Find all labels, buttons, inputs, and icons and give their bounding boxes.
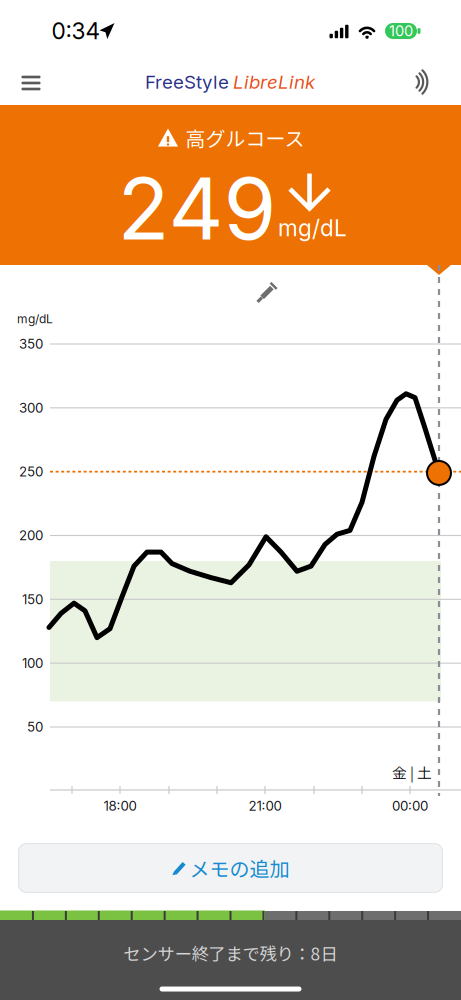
- staticText: 200: [19, 527, 43, 543]
- staticText: 00:00: [392, 798, 428, 814]
- staticText: 21:00: [248, 798, 281, 814]
- staticText: メモの追加: [189, 853, 289, 882]
- staticText: 350: [19, 336, 43, 352]
- staticText: 50: [27, 719, 43, 735]
- staticText: LibreLink: [233, 71, 315, 93]
- staticText: 100: [22, 655, 43, 671]
- button[interactable]: Menu: [8, 61, 54, 105]
- staticText: 250: [19, 464, 43, 480]
- staticText: 300: [19, 400, 43, 416]
- staticText: 100: [389, 22, 413, 40]
- staticText: センサー終了まで残り：8日: [123, 940, 337, 966]
- staticText: 金 | 土: [392, 761, 432, 783]
- staticText: 249: [117, 157, 276, 260]
- button[interactable]: メモの追加: [18, 843, 443, 893]
- staticText: FreeStyle: [145, 71, 229, 93]
- staticText: 0:34: [51, 17, 100, 45]
- staticText: mg/dL: [278, 214, 347, 242]
- staticText: 18:00: [103, 798, 136, 814]
- staticText: 高グルコース: [185, 123, 304, 152]
- staticText: mg/dL: [17, 312, 53, 326]
- staticText: 150: [22, 591, 43, 607]
- button[interactable]: Scan sensor: [401, 59, 447, 105]
